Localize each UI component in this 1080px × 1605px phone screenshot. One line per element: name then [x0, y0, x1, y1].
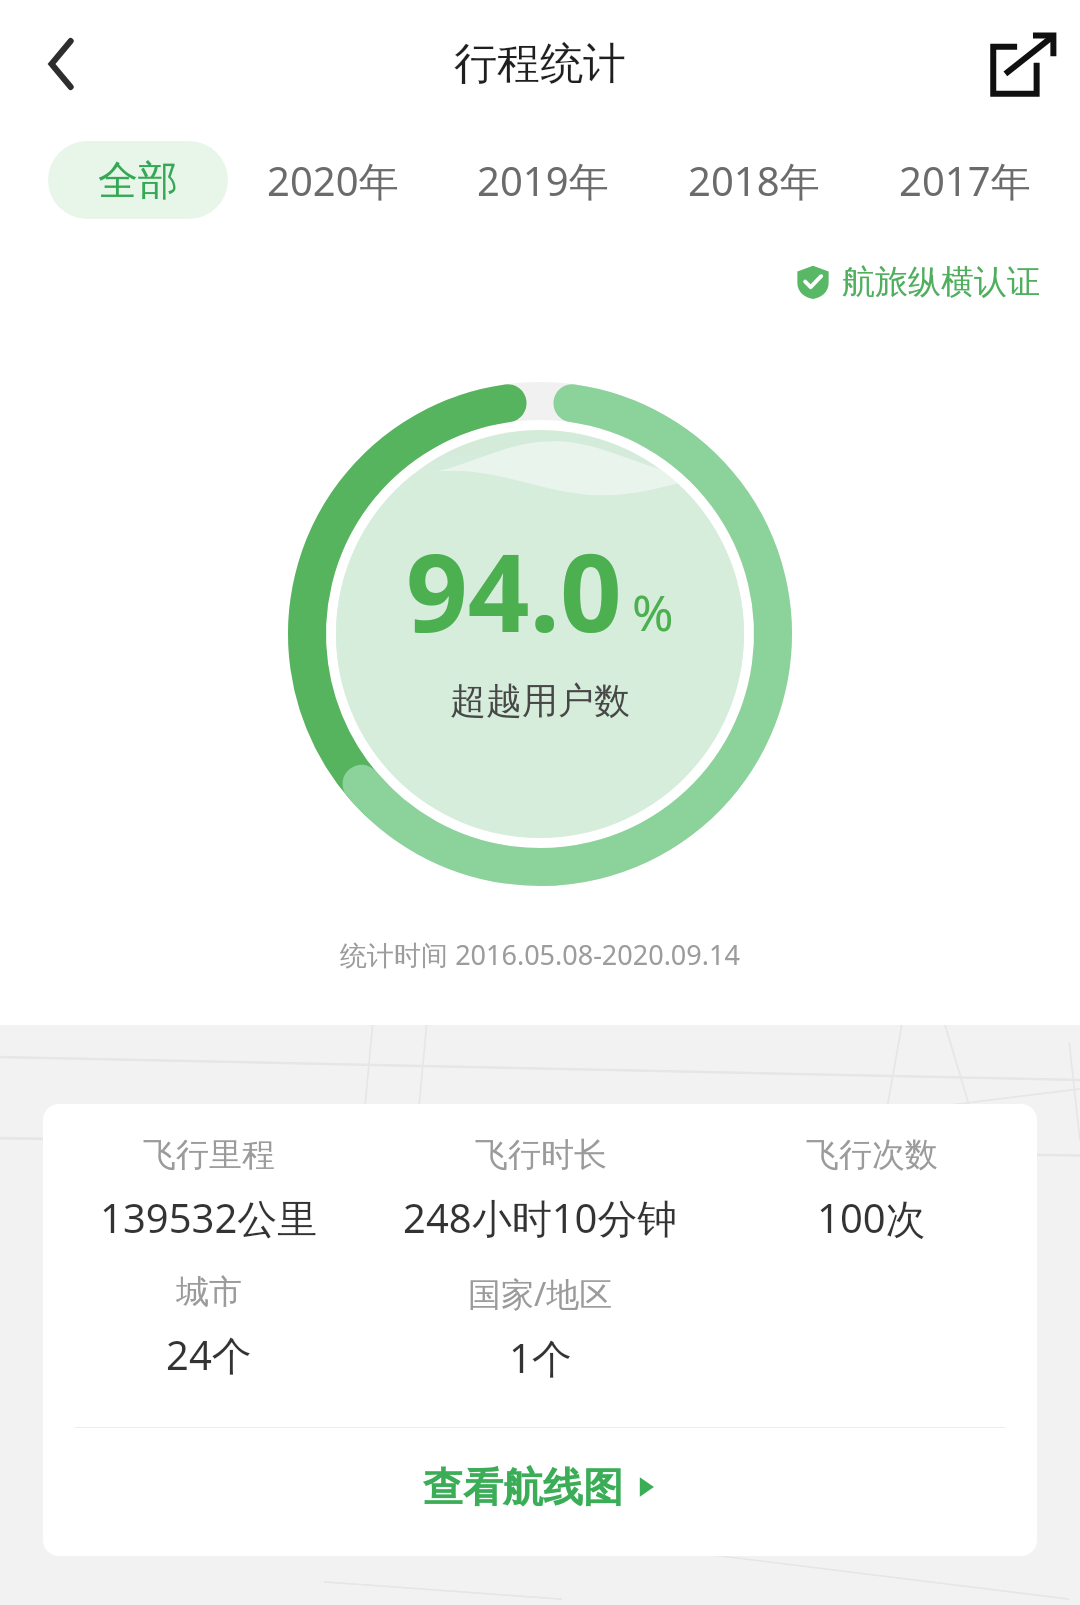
staticText: 飞行次数	[806, 1134, 938, 1176]
staticText: 航旅纵横认证	[842, 261, 1040, 303]
staticText: 行程统计	[454, 37, 626, 91]
staticText: 城市	[176, 1271, 242, 1313]
staticText: 统计时间 2016.05.08-2020.09.14	[0, 936, 1080, 973]
staticText: 139532公里	[100, 1190, 318, 1245]
staticText: 2017年	[899, 153, 1031, 208]
staticText: 飞行时长	[475, 1134, 607, 1176]
staticText: %	[632, 578, 674, 646]
staticText: 1个	[509, 1330, 572, 1385]
button[interactable]: 查看航线图	[43, 1428, 1037, 1546]
button[interactable]: Back	[18, 27, 92, 101]
staticText: 2019年	[477, 153, 609, 208]
button[interactable]: Share	[992, 33, 1054, 95]
staticText: 飞行里程	[143, 1134, 275, 1176]
staticText: 查看航线图	[423, 1462, 623, 1512]
button[interactable]: 2017年	[859, 128, 1070, 232]
button[interactable]: 2020年	[228, 128, 438, 232]
button[interactable]: 2018年	[648, 128, 859, 232]
staticText: 国家/地区	[468, 1271, 613, 1316]
staticText: 248小时10分钟	[403, 1190, 678, 1245]
button[interactable]: 全部	[48, 141, 228, 219]
staticText: 94.0	[406, 517, 622, 664]
button[interactable]: 2019年	[438, 128, 648, 232]
staticText: 100次	[817, 1190, 926, 1245]
staticText: 超越用户数	[450, 678, 630, 723]
staticText: 全部	[98, 155, 178, 205]
staticText: 2020年	[267, 153, 399, 208]
staticText: 24个	[166, 1327, 252, 1382]
staticText: 2018年	[688, 153, 820, 208]
